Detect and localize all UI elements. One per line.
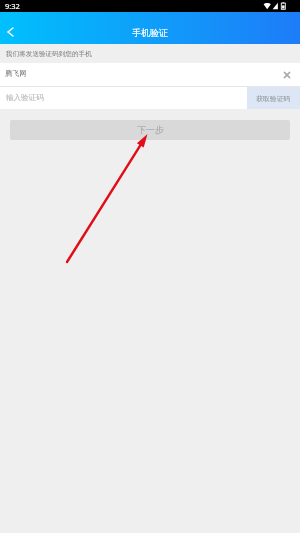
button[interactable]: 下一步 [10, 120, 290, 140]
staticText: 9:32 [5, 1, 20, 11]
staticText: 腾飞网 [5, 69, 27, 78]
button[interactable]: Clear text [277, 65, 297, 85]
staticText: 输入验证码 [6, 93, 44, 102]
staticText: 下一步 [137, 124, 164, 135]
staticText: 手机验证 [132, 27, 168, 38]
button[interactable]: Back [0, 21, 21, 43]
staticText: 获取验证码 [256, 94, 291, 103]
staticText: 我们将发送验证码到您的手机 [6, 50, 92, 58]
button[interactable]: 获取验证码 [247, 87, 300, 109]
button[interactable]: Account 腾飞网 [0, 63, 300, 86]
button[interactable]: 输入验证码 [0, 87, 300, 109]
